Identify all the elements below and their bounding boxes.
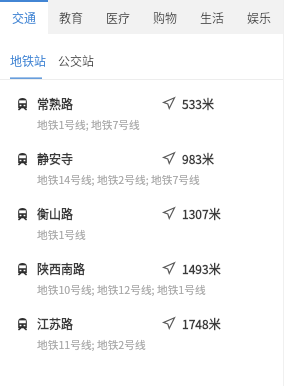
staticText: 江苏路 [37, 315, 74, 332]
staticText: 医疗 [106, 9, 131, 26]
staticText: 地铁14号线; 地铁2号线; 地铁7号线 [37, 172, 200, 187]
staticText: 1307米 [182, 205, 221, 222]
staticText: 地铁10号线; 地铁12号线; 地铁1号线 [37, 282, 206, 297]
staticText: 1748米 [182, 315, 221, 332]
button[interactable]: 医疗 [95, 0, 142, 34]
staticText: 常熟路 [37, 95, 74, 112]
button[interactable]: 教育 [48, 0, 95, 34]
staticText: 衡山路 [37, 205, 74, 222]
staticText: 静安寺 [37, 150, 74, 167]
button[interactable]: 交通 [0, 0, 48, 34]
staticText: 地铁11号线; 地铁2号线 [37, 337, 146, 352]
staticText: 交通 [12, 9, 37, 26]
button[interactable]: 公交站 [58, 34, 94, 80]
button[interactable]: 衡山路 [0, 190, 283, 245]
staticText: 地铁站 [10, 52, 46, 69]
staticText: 生活 [200, 9, 225, 26]
staticText: 教育 [59, 9, 84, 26]
staticText: 陕西南路 [37, 260, 86, 277]
button[interactable]: 娱乐 [236, 0, 283, 34]
button[interactable]: 静安寺 [0, 135, 283, 190]
staticText: 娱乐 [247, 9, 272, 26]
staticText: 购物 [153, 9, 178, 26]
staticText: 公交站 [58, 52, 94, 69]
button[interactable]: 生活 [189, 0, 236, 34]
button[interactable]: 陕西南路 [0, 245, 283, 300]
button[interactable]: 地铁站 [10, 34, 46, 80]
staticText: 1493米 [182, 260, 221, 277]
button[interactable]: 常熟路 [0, 80, 283, 135]
button[interactable]: 购物 [142, 0, 189, 34]
staticText: 地铁1号线 [37, 227, 86, 242]
staticText: 533米 [182, 95, 214, 112]
staticText: 983米 [182, 150, 214, 167]
button[interactable]: 江苏路 [0, 300, 283, 355]
staticText: 地铁1号线; 地铁7号线 [37, 117, 140, 132]
